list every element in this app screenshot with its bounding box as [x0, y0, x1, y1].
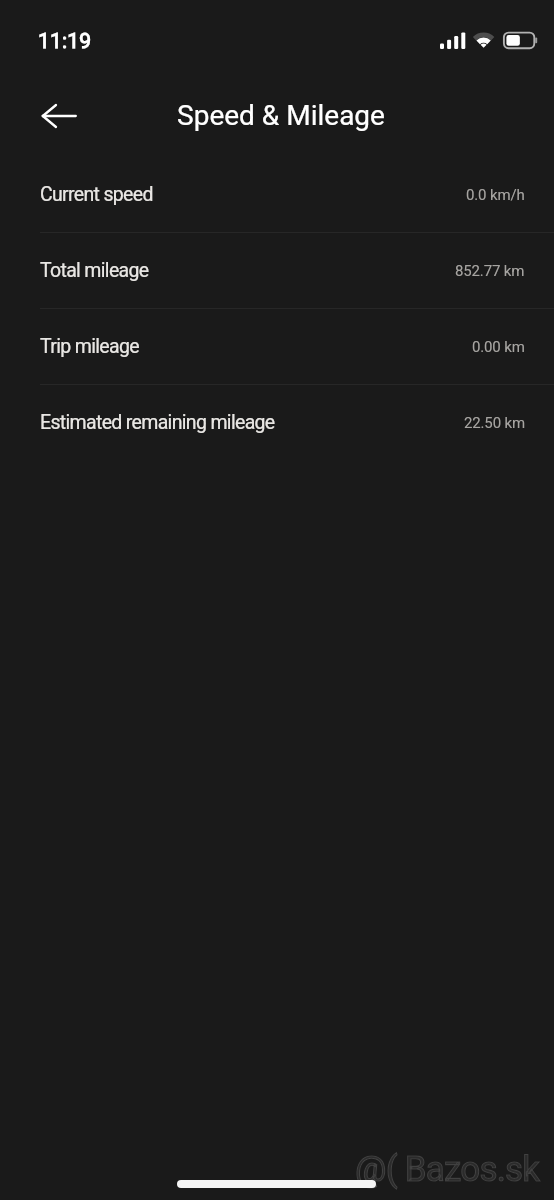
- staticText: Estimated remaining mileage: [40, 411, 275, 434]
- button[interactable]: Total mileage: [0, 233, 554, 308]
- staticText: 852.77 km: [455, 262, 525, 280]
- staticText: 11:19: [38, 29, 92, 54]
- staticText: 0.0 km/h: [466, 186, 525, 204]
- staticText: Current speed: [40, 183, 153, 206]
- button[interactable]: Current speed: [0, 157, 554, 232]
- staticText: Trip mileage: [40, 335, 139, 358]
- button[interactable]: Estimated remaining mileage: [0, 385, 554, 460]
- staticText: Total mileage: [40, 259, 149, 282]
- staticText: 22.50 km: [464, 414, 525, 432]
- staticText: Speed & Mileage: [177, 99, 385, 132]
- staticText: @( Bazos.sk: [355, 1149, 540, 1190]
- button[interactable]: Trip mileage: [0, 309, 554, 384]
- staticText: 0.00 km: [472, 338, 525, 356]
- staticText: @( Bazos.sk: [355, 1149, 540, 1190]
- button[interactable]: Back: [30, 87, 88, 145]
